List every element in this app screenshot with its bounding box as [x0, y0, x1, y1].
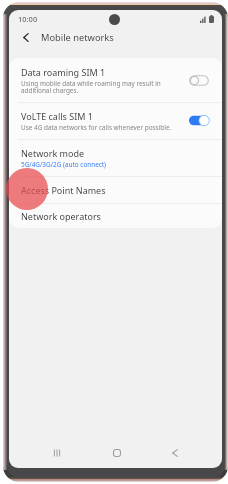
button[interactable]: Navigate up — [15, 27, 36, 48]
staticText: 5G/4G/3G/2G (auto connect) — [21, 160, 107, 169]
button[interactable]: VoLTE calls SIM 1 — [9, 102, 222, 139]
button[interactable]: Home — [104, 440, 130, 466]
staticText: VoLTE calls SIM 1 — [21, 110, 93, 122]
button[interactable]: Network operators — [9, 203, 222, 228]
staticText: Use 4G data networks for calls whenever … — [21, 123, 172, 132]
staticText: Network operators — [21, 210, 101, 222]
button[interactable]: Recent apps — [44, 440, 70, 466]
button[interactable]: Switch off — [189, 75, 209, 86]
staticText: Mobile networks — [41, 31, 114, 44]
button[interactable]: Data roaming SIM 1 — [9, 58, 222, 102]
button[interactable]: Back — [162, 440, 188, 466]
staticText: Data roaming SIM 1 — [21, 66, 106, 78]
button[interactable]: Network mode — [9, 139, 222, 176]
button[interactable]: Switch on — [189, 115, 209, 126]
staticText: Network mode — [21, 147, 85, 159]
button[interactable]: Access Point Names — [9, 176, 222, 203]
staticText: Access Point Names — [21, 184, 106, 196]
staticText: Using mobile data while roaming may resu… — [21, 79, 161, 95]
staticText: 10:00 — [18, 14, 38, 24]
